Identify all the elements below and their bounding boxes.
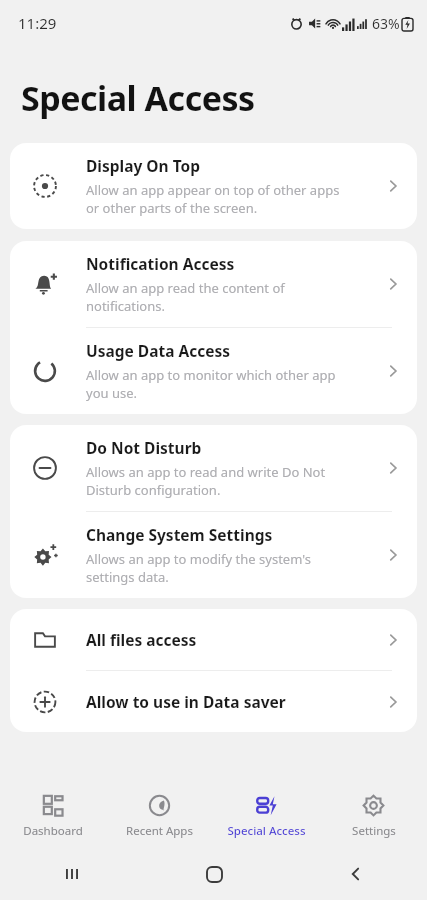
staticText: 11:29 [18, 13, 57, 33]
button[interactable]: Special Access [213, 786, 320, 848]
button[interactable]: All files access [10, 609, 417, 670]
button[interactable]: Notification Access [10, 241, 417, 327]
staticText: Do Not Disturb [86, 437, 202, 458]
staticText: Change System Settings [86, 524, 273, 545]
staticText: All files access [86, 629, 385, 650]
button[interactable]: Home [143, 848, 285, 900]
staticText: Notification Access [86, 253, 235, 274]
button[interactable]: Usage Data Access [10, 328, 417, 414]
staticText: Allow an app appear on top of other apps… [86, 181, 340, 217]
staticText: Allow an app to monitor which other app … [86, 366, 336, 402]
staticText: Allows an app to modify the system's set… [86, 550, 311, 586]
button[interactable]: Back [285, 848, 427, 900]
button[interactable]: Recent Apps [106, 786, 213, 848]
button[interactable]: Settings [320, 786, 427, 848]
staticText: Usage Data Access [86, 340, 231, 361]
button[interactable]: Do Not Disturb [10, 425, 417, 511]
staticText: 63% [372, 14, 400, 33]
staticText: Special Access [21, 75, 255, 121]
staticText: Allow to use in Data saver [86, 691, 385, 712]
staticText: Display On Top [86, 155, 201, 176]
staticText: Allows an app to read and write Do Not D… [86, 463, 326, 499]
staticText: Recent Apps [126, 823, 193, 839]
staticText: Special Access [227, 823, 306, 839]
button[interactable]: Dashboard [0, 786, 106, 848]
button[interactable]: Recents [0, 848, 143, 900]
staticText: Settings [352, 823, 396, 839]
staticText: Dashboard [23, 823, 83, 839]
button[interactable]: Allow to use in Data saver [10, 671, 417, 732]
button[interactable]: Change System Settings [10, 512, 417, 598]
staticText: Allow an app read the content of notific… [86, 279, 285, 315]
button[interactable]: Display On Top [10, 143, 417, 229]
